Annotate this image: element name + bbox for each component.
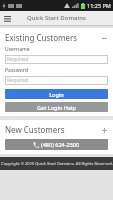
button[interactable]: Get Login Help	[5, 102, 108, 112]
staticText: Login	[49, 91, 64, 98]
button[interactable]: Required	[5, 76, 108, 85]
staticText: (480) 624-2500	[41, 141, 80, 148]
staticText: 11:25 PM	[87, 2, 111, 9]
button[interactable]: New Customers	[5, 124, 108, 135]
button[interactable]: Login	[5, 89, 108, 99]
button[interactable]: Required	[5, 55, 108, 64]
button[interactable]: Existing Customers	[5, 32, 108, 43]
staticText: Existing Customers	[5, 32, 100, 43]
button[interactable]: Menu	[2, 13, 13, 24]
staticText: Password	[5, 67, 28, 74]
other: Expand	[100, 126, 108, 134]
staticText: Quick Start Domains	[27, 14, 86, 22]
staticText: Username	[5, 46, 30, 53]
other: Collapse	[100, 34, 108, 42]
staticText: Copyright © 2015 Quick Start Domains. Al…	[1, 161, 113, 166]
button[interactable]: (480) 624-2500	[5, 139, 108, 150]
staticText: Required	[7, 77, 29, 84]
staticText: Required	[7, 56, 29, 63]
staticText: New Customers	[5, 124, 100, 135]
staticText: Get Login Help	[37, 104, 76, 111]
